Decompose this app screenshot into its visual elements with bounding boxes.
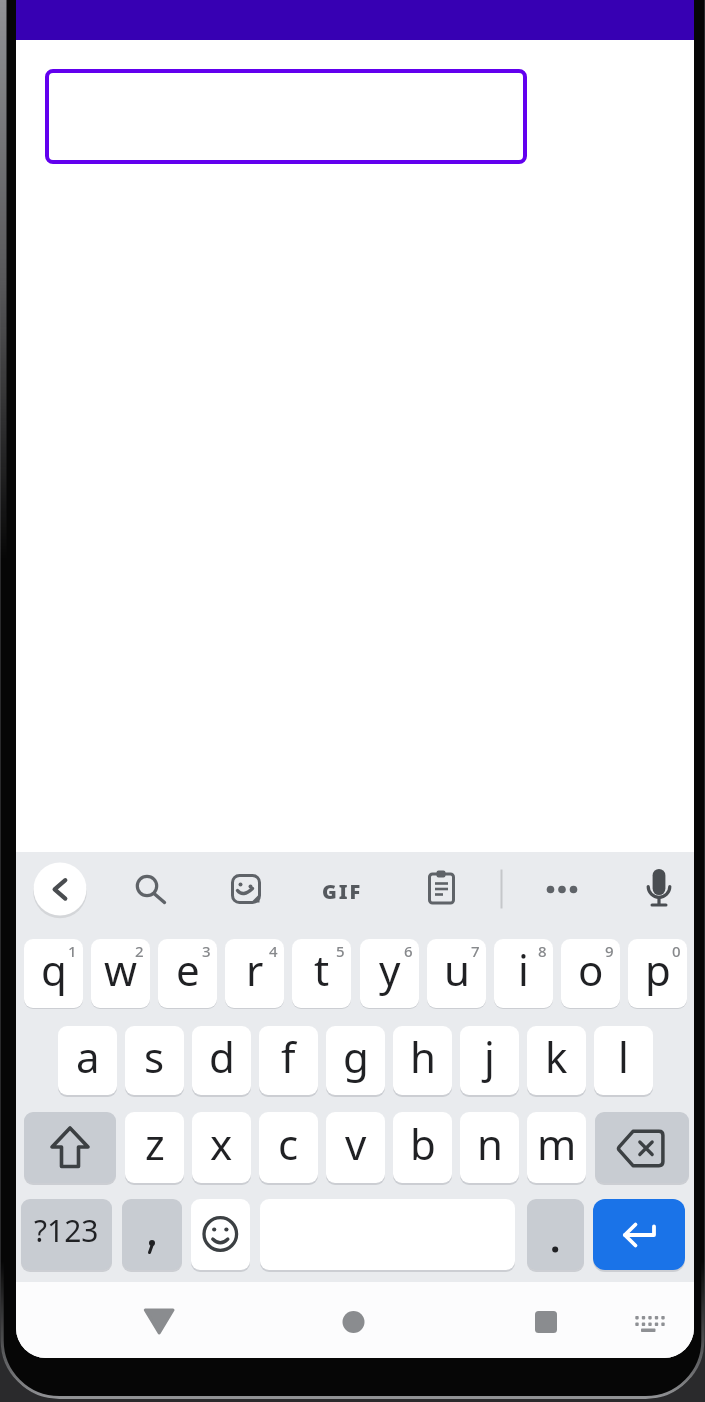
- staticText: ?123: [34, 1210, 99, 1251]
- staticText: x: [210, 1115, 233, 1172]
- button[interactable]: [191, 1199, 250, 1270]
- button[interactable]: k: [527, 1026, 586, 1095]
- button[interactable]: u: [427, 939, 486, 1008]
- staticText: f: [281, 1028, 296, 1085]
- staticText: a: [76, 1028, 100, 1085]
- button[interactable]: y: [360, 939, 419, 1008]
- button[interactable]: o: [561, 939, 620, 1008]
- button[interactable]: [527, 1199, 584, 1270]
- button[interactable]: [593, 1199, 685, 1270]
- staticText: v: [345, 1115, 367, 1172]
- staticText: h: [410, 1028, 436, 1085]
- button[interactable]: [221, 864, 271, 914]
- staticText: w: [104, 941, 138, 998]
- button[interactable]: v: [326, 1112, 385, 1183]
- staticText: t: [314, 941, 330, 998]
- button[interactable]: ?123: [21, 1199, 112, 1270]
- staticText: e: [176, 941, 200, 998]
- staticText: l: [618, 1028, 629, 1085]
- staticText: 5: [336, 941, 345, 961]
- button[interactable]: x: [192, 1112, 251, 1183]
- staticText: m: [537, 1115, 577, 1172]
- staticText: 3: [202, 941, 211, 961]
- button[interactable]: [416, 863, 466, 913]
- staticText: c: [278, 1115, 299, 1172]
- staticText: 1: [68, 941, 77, 961]
- button[interactable]: b: [393, 1112, 452, 1183]
- button[interactable]: s: [125, 1026, 184, 1095]
- staticText: 7: [471, 941, 480, 961]
- staticText: 4: [269, 941, 278, 961]
- button[interactable]: [623, 1297, 673, 1347]
- staticText: s: [144, 1028, 165, 1085]
- button[interactable]: [134, 1296, 184, 1346]
- staticText: 9: [605, 941, 614, 961]
- staticText: b: [410, 1115, 436, 1172]
- button[interactable]: f: [259, 1026, 318, 1095]
- button[interactable]: n: [460, 1112, 519, 1183]
- staticText: GIF: [322, 878, 363, 900]
- button[interactable]: [521, 1297, 571, 1347]
- staticText: z: [145, 1115, 165, 1172]
- staticText: j: [484, 1028, 495, 1085]
- button[interactable]: r: [225, 939, 284, 1008]
- staticText: d: [209, 1028, 235, 1085]
- button[interactable]: [24, 1112, 116, 1183]
- button[interactable]: e: [158, 939, 217, 1008]
- button[interactable]: [595, 1112, 689, 1183]
- button[interactable]: a: [58, 1026, 117, 1095]
- button[interactable]: [329, 1297, 379, 1347]
- button[interactable]: [122, 1199, 182, 1270]
- staticText: u: [444, 941, 470, 998]
- button[interactable]: i: [494, 939, 553, 1008]
- button[interactable]: h: [393, 1026, 452, 1095]
- button[interactable]: [634, 863, 684, 913]
- staticText: r: [246, 941, 264, 998]
- staticText: y: [379, 941, 401, 998]
- staticText: o: [578, 941, 604, 998]
- staticText: k: [545, 1028, 568, 1085]
- button[interactable]: [35, 864, 85, 914]
- button[interactable]: j: [460, 1026, 519, 1095]
- button[interactable]: q: [24, 939, 83, 1008]
- button[interactable]: l: [594, 1026, 653, 1095]
- staticText: 8: [538, 941, 547, 961]
- staticText: g: [343, 1028, 369, 1085]
- button[interactable]: t: [292, 939, 351, 1008]
- button[interactable]: [317, 864, 367, 914]
- button[interactable]: c: [259, 1112, 318, 1183]
- button[interactable]: [122, 861, 172, 911]
- staticText: 2: [135, 941, 144, 961]
- button[interactable]: d: [192, 1026, 251, 1095]
- staticText: i: [518, 941, 529, 998]
- button[interactable]: m: [527, 1112, 586, 1183]
- button[interactable]: p: [628, 939, 687, 1008]
- staticText: 0: [672, 941, 681, 961]
- button[interactable]: w: [91, 939, 150, 1008]
- button[interactable]: [45, 69, 527, 164]
- staticText: q: [41, 941, 67, 998]
- button[interactable]: [537, 865, 587, 915]
- staticText: n: [477, 1115, 503, 1172]
- button[interactable]: z: [125, 1112, 184, 1183]
- button[interactable]: [16, 852, 694, 1282]
- staticText: p: [645, 941, 671, 998]
- button[interactable]: g: [326, 1026, 385, 1095]
- staticText: 6: [404, 941, 413, 961]
